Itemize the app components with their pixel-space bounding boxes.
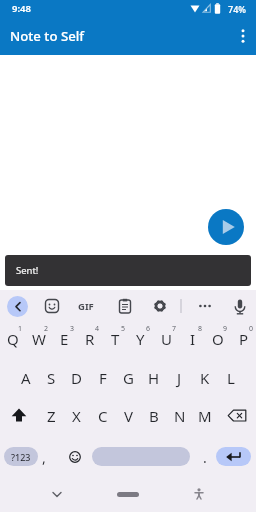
staticText: I xyxy=(190,329,196,349)
staticText: P xyxy=(239,329,249,349)
button[interactable]: G xyxy=(116,361,141,395)
staticText: R xyxy=(85,329,95,349)
staticText: 0 xyxy=(249,324,254,334)
staticText: U xyxy=(161,329,172,349)
button[interactable]: GIF xyxy=(73,298,99,314)
button[interactable] xyxy=(235,21,251,51)
staticText: T xyxy=(111,329,120,349)
button[interactable]: P xyxy=(231,322,256,356)
button[interactable]: Q xyxy=(0,322,25,356)
staticText: N xyxy=(174,406,186,426)
button[interactable]: ?123 xyxy=(4,447,38,466)
button[interactable] xyxy=(116,488,140,500)
staticText: . xyxy=(203,448,207,467)
staticText: 8 xyxy=(198,324,203,334)
staticText: C xyxy=(98,406,108,426)
staticText: V xyxy=(124,406,134,426)
staticText: 6 xyxy=(146,324,151,334)
button[interactable]: S xyxy=(39,361,64,395)
staticText: 5 xyxy=(121,324,126,334)
staticText: 1 xyxy=(18,324,23,334)
staticText: 4 xyxy=(95,324,100,334)
button[interactable]: C xyxy=(90,399,115,433)
button[interactable] xyxy=(216,447,251,466)
button[interactable] xyxy=(208,209,244,245)
button[interactable]: D xyxy=(64,361,89,395)
staticText: S xyxy=(47,368,56,388)
staticText: 7 xyxy=(172,324,177,334)
button[interactable] xyxy=(195,297,215,315)
staticText: Sent! xyxy=(16,264,39,277)
staticText: D xyxy=(71,368,82,388)
staticText: M xyxy=(198,406,212,426)
staticText: Note to Self xyxy=(10,27,84,45)
staticText: J xyxy=(177,368,182,388)
button[interactable]: F xyxy=(90,361,115,395)
button[interactable]: U xyxy=(154,322,179,356)
staticText: G xyxy=(123,368,134,388)
button[interactable]: , xyxy=(37,447,51,467)
button[interactable] xyxy=(116,297,134,315)
button[interactable]: M xyxy=(192,399,217,433)
button[interactable]: K xyxy=(192,361,217,395)
button[interactable]: O xyxy=(205,322,230,356)
button[interactable] xyxy=(220,399,254,433)
button[interactable]: Y xyxy=(128,322,153,356)
button[interactable]: E xyxy=(52,322,77,356)
button[interactable] xyxy=(188,483,210,505)
staticText: 2 xyxy=(44,324,49,334)
button[interactable]: B xyxy=(141,399,166,433)
button[interactable] xyxy=(46,483,68,505)
button[interactable] xyxy=(92,447,190,466)
button[interactable] xyxy=(2,399,36,433)
button[interactable] xyxy=(7,296,28,317)
button[interactable]: R xyxy=(77,322,102,356)
button[interactable]: I xyxy=(180,322,205,356)
staticText: 9:48 xyxy=(12,2,31,15)
button[interactable]: W xyxy=(26,322,51,356)
staticText: ?123 xyxy=(11,451,31,463)
button[interactable]: N xyxy=(167,399,192,433)
staticText: L xyxy=(227,368,235,388)
staticText: GIF xyxy=(78,300,94,313)
staticText: E xyxy=(60,329,69,349)
staticText: , xyxy=(42,448,46,467)
staticText: X xyxy=(72,406,81,426)
staticText: Q xyxy=(7,329,19,349)
button[interactable]: V xyxy=(116,399,141,433)
button[interactable] xyxy=(151,297,169,315)
staticText: 74% xyxy=(228,3,246,15)
staticText: A xyxy=(21,368,31,388)
button[interactable] xyxy=(231,298,249,316)
staticText: 3 xyxy=(70,324,75,334)
staticText: F xyxy=(99,368,107,388)
staticText: O xyxy=(212,329,224,349)
staticText: H xyxy=(148,368,160,388)
button[interactable]: J xyxy=(167,361,192,395)
button[interactable]: L xyxy=(218,361,243,395)
button[interactable]: Z xyxy=(39,399,64,433)
staticText: Y xyxy=(136,329,145,349)
button[interactable]: X xyxy=(64,399,89,433)
button[interactable]: T xyxy=(103,322,128,356)
button[interactable]: H xyxy=(141,361,166,395)
staticText: W xyxy=(32,329,46,349)
staticText: 9 xyxy=(223,324,228,334)
button[interactable] xyxy=(66,448,84,466)
button[interactable] xyxy=(43,297,61,315)
staticText: K xyxy=(200,368,210,388)
button[interactable]: . xyxy=(198,447,212,467)
staticText: B xyxy=(149,406,159,426)
button[interactable]: A xyxy=(13,361,38,395)
staticText: Z xyxy=(47,406,56,426)
